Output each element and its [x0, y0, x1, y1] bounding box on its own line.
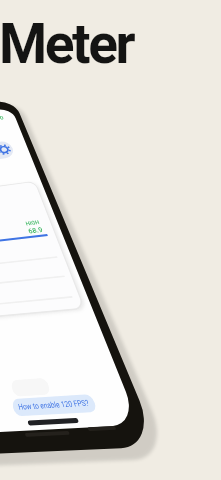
button[interactable]	[10, 392, 98, 410]
button[interactable]	[0, 135, 26, 153]
